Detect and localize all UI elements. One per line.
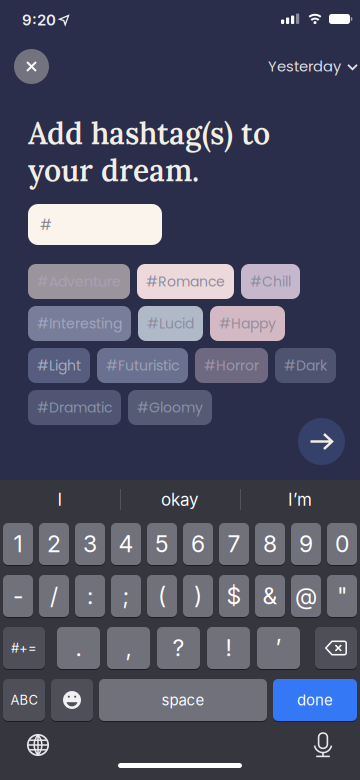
- staticText: ;: [122, 582, 129, 610]
- button[interactable]: 0: [327, 523, 357, 565]
- staticText: 6: [191, 530, 205, 558]
- staticText: &: [262, 582, 277, 610]
- staticText: ): [194, 582, 202, 610]
- button[interactable]: #Lucid: [138, 306, 203, 341]
- button[interactable]: Delete: [315, 627, 357, 669]
- staticText: #: [40, 215, 52, 235]
- button[interactable]: #+=: [3, 627, 45, 669]
- staticText: 9:20: [22, 11, 56, 29]
- staticText: #Dark: [284, 356, 327, 375]
- button[interactable]: ABC: [3, 679, 45, 721]
- staticText: 5: [155, 530, 169, 558]
- button[interactable]: !: [207, 627, 250, 669]
- button[interactable]: #Adventure: [28, 264, 130, 299]
- button[interactable]: Next: [298, 418, 345, 465]
- button[interactable]: I’m: [240, 480, 360, 519]
- button[interactable]: 8: [255, 523, 285, 565]
- button[interactable]: 1: [3, 523, 33, 565]
- button[interactable]: /: [39, 575, 69, 617]
- button[interactable]: Yesterday: [268, 56, 357, 77]
- staticText: I’m: [288, 489, 312, 510]
- button[interactable]: #Chill: [241, 264, 300, 299]
- staticText: ’: [275, 634, 281, 662]
- button[interactable]: $: [219, 575, 249, 617]
- staticText: $: [226, 582, 241, 610]
- button[interactable]: #Dark: [275, 348, 336, 383]
- staticText: okay: [161, 489, 199, 510]
- button[interactable]: 9: [291, 523, 321, 565]
- staticText: (: [158, 582, 166, 610]
- button[interactable]: Dictate: [313, 732, 333, 757]
- staticText: ABC: [10, 692, 37, 708]
- staticText: #Futuristic: [106, 356, 179, 375]
- staticText: #Interesting: [37, 314, 122, 333]
- button[interactable]: 3: [75, 523, 105, 565]
- staticText: :: [87, 582, 93, 610]
- staticText: @: [295, 582, 317, 610]
- staticText: 2: [47, 530, 61, 558]
- button[interactable]: (: [147, 575, 177, 617]
- staticText: /: [50, 582, 58, 610]
- staticText: #Chill: [250, 272, 291, 291]
- button[interactable]: I: [0, 480, 120, 519]
- staticText: -: [13, 582, 23, 610]
- staticText: #Light: [37, 356, 81, 375]
- button[interactable]: done: [273, 679, 357, 721]
- staticText: Yesterday: [268, 56, 341, 77]
- button[interactable]: ?: [157, 627, 200, 669]
- button[interactable]: #Gloomy: [128, 390, 212, 425]
- staticText: #+=: [11, 640, 37, 656]
- button[interactable]: #Horror: [195, 348, 268, 383]
- staticText: #Lucid: [147, 314, 194, 333]
- button[interactable]: Close: [14, 49, 49, 84]
- button[interactable]: #Interesting: [28, 306, 131, 341]
- button[interactable]: space: [99, 679, 267, 721]
- button[interactable]: 7: [219, 523, 249, 565]
- button[interactable]: #Romance: [137, 264, 234, 299]
- staticText: ,: [125, 634, 131, 662]
- staticText: .: [75, 634, 81, 662]
- staticText: ": [337, 582, 347, 610]
- staticText: #Dramatic: [37, 398, 112, 417]
- staticText: 0: [335, 530, 349, 558]
- staticText: #Romance: [146, 272, 225, 291]
- button[interactable]: #Dramatic: [28, 390, 121, 425]
- staticText: #Gloomy: [137, 398, 203, 417]
- staticText: ?: [172, 634, 184, 662]
- button[interactable]: Emoji: [51, 679, 93, 721]
- staticText: 8: [263, 530, 277, 558]
- staticText: #Adventure: [37, 272, 121, 291]
- button[interactable]: 6: [183, 523, 213, 565]
- button[interactable]: 4: [111, 523, 141, 565]
- button[interactable]: -: [3, 575, 33, 617]
- staticText: Add hashtag(s) to: [28, 114, 270, 152]
- button[interactable]: ’: [257, 627, 300, 669]
- button[interactable]: okay: [120, 480, 240, 519]
- button[interactable]: Next keyboard: [27, 734, 49, 756]
- staticText: 4: [118, 530, 133, 558]
- staticText: 1: [13, 530, 22, 558]
- button[interactable]: ": [327, 575, 357, 617]
- button[interactable]: #Happy: [210, 306, 285, 341]
- staticText: #Happy: [219, 314, 276, 333]
- staticText: 3: [83, 530, 97, 558]
- staticText: #Horror: [204, 356, 259, 375]
- staticText: 9: [299, 530, 313, 558]
- button[interactable]: .: [57, 627, 100, 669]
- button[interactable]: #Light: [28, 348, 90, 383]
- staticText: your dream.: [28, 151, 199, 189]
- button[interactable]: ;: [111, 575, 141, 617]
- staticText: done: [297, 691, 333, 709]
- button[interactable]: ): [183, 575, 213, 617]
- button[interactable]: @: [291, 575, 321, 617]
- button[interactable]: #Futuristic: [97, 348, 188, 383]
- button[interactable]: :: [75, 575, 105, 617]
- staticText: !: [225, 634, 231, 662]
- button[interactable]: ,: [107, 627, 150, 669]
- button[interactable]: 5: [147, 523, 177, 565]
- staticText: 7: [227, 530, 240, 558]
- button[interactable]: 2: [39, 523, 69, 565]
- staticText: I: [57, 489, 62, 510]
- button[interactable]: &: [255, 575, 285, 617]
- button[interactable]: Hashtag text field: [28, 204, 162, 245]
